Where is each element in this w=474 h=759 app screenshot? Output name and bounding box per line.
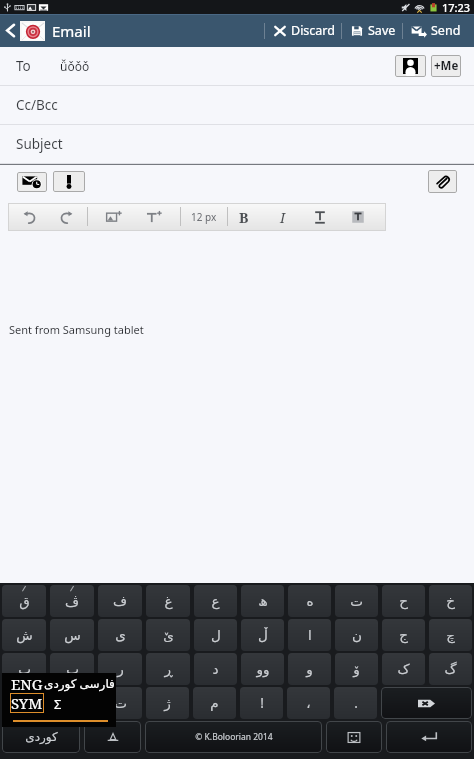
button[interactable]: وو <box>241 653 284 685</box>
button[interactable]: Contacts <box>395 55 426 77</box>
button[interactable]: Redo <box>49 203 83 231</box>
button[interactable]: خ <box>429 585 472 617</box>
button[interactable]: و <box>288 653 331 685</box>
staticText: Σ <box>54 695 62 713</box>
staticText: I <box>280 208 286 227</box>
button[interactable]: ە <box>288 585 331 617</box>
button[interactable]: ی <box>98 619 142 651</box>
button[interactable]: ب <box>2 653 46 685</box>
button[interactable]: Text color <box>341 203 375 231</box>
button[interactable]: To <box>0 47 474 85</box>
button[interactable]: Underline <box>303 203 337 231</box>
button[interactable]: ت <box>335 585 378 617</box>
button[interactable]: +Me <box>431 55 461 77</box>
staticText: خ <box>446 593 455 609</box>
button[interactable]: . <box>334 687 377 719</box>
staticText: Send <box>431 22 461 39</box>
button[interactable]: I <box>266 203 300 231</box>
button[interactable]: SYM <box>2 687 94 719</box>
staticText: ێ <box>163 627 174 643</box>
staticText: +Me <box>434 58 459 74</box>
button[interactable]: س <box>50 619 94 651</box>
button[interactable]: B <box>227 203 261 231</box>
staticText: Cc/Bcc <box>16 96 58 114</box>
staticText: Discard <box>291 22 335 39</box>
button[interactable]: Discard <box>265 14 341 47</box>
button[interactable]: ، <box>287 687 330 719</box>
button[interactable]: Back <box>0 14 20 47</box>
staticText: ا <box>308 627 312 643</box>
button[interactable]: ژ <box>146 687 189 719</box>
button[interactable]: Attach <box>428 170 457 193</box>
button[interactable]: ت <box>98 687 142 719</box>
button[interactable]: Save <box>342 14 402 47</box>
staticText: غ <box>164 593 173 609</box>
button[interactable]: Backspace <box>381 687 472 719</box>
staticText: فارسی کوردی <box>44 675 124 691</box>
staticText: م <box>210 695 219 711</box>
staticText: ! <box>260 694 264 712</box>
button[interactable]: م <box>193 687 236 719</box>
button[interactable]: ع <box>194 585 237 617</box>
button[interactable]: ش <box>2 619 46 651</box>
button[interactable]: Insert image <box>97 203 131 231</box>
staticText: ە <box>306 593 314 609</box>
staticText: . <box>354 694 358 712</box>
button[interactable]: ڵ <box>241 619 284 651</box>
button[interactable]: پ <box>50 653 94 685</box>
button[interactable]: غ <box>146 585 190 617</box>
button[interactable]: ر <box>98 653 142 685</box>
staticText: ژ <box>164 695 171 711</box>
button[interactable]: Schedule send <box>17 172 47 192</box>
staticText: ش <box>16 627 33 643</box>
button[interactable]: د <box>194 653 237 685</box>
button[interactable]: Undo <box>13 203 47 231</box>
button[interactable]: Send <box>403 14 467 47</box>
staticText: ع <box>211 593 220 609</box>
staticText: Email <box>52 21 91 41</box>
button[interactable]: © K.Boloorian 2014 <box>145 721 322 753</box>
staticText: SYM <box>11 693 43 713</box>
button[interactable]: ھ <box>241 585 284 617</box>
staticText: ب <box>18 661 31 677</box>
button[interactable]: ا <box>288 619 331 651</box>
button[interactable]: ل <box>194 619 237 651</box>
button[interactable]: ف <box>98 585 142 617</box>
staticText: ر <box>117 661 124 677</box>
button[interactable]: گ <box>429 653 472 685</box>
staticText: 12 px <box>191 210 217 224</box>
staticText: ت <box>114 695 127 711</box>
staticText: کوردی <box>25 730 58 744</box>
button[interactable]: ڤ <box>50 585 94 617</box>
staticText: ی <box>115 627 126 643</box>
button[interactable]: چ <box>429 619 472 651</box>
button[interactable]: Font size <box>137 203 171 231</box>
button[interactable]: Priority <box>53 171 85 192</box>
button[interactable]: Cc/Bcc <box>0 86 474 124</box>
button[interactable]: ک <box>382 653 425 685</box>
staticText: ENG <box>11 674 43 694</box>
button[interactable]: کوردی <box>2 721 80 753</box>
button[interactable]: ڕ <box>146 653 190 685</box>
staticText: ھ <box>258 593 268 609</box>
button[interactable]: ج <box>382 619 425 651</box>
staticText: Save <box>368 22 396 39</box>
button[interactable]: ن <box>335 619 378 651</box>
button[interactable]: ح <box>382 585 425 617</box>
button[interactable]: Enter <box>386 721 472 753</box>
button[interactable]: ێ <box>146 619 190 651</box>
button[interactable]: Settings <box>84 721 141 753</box>
staticText: ڤ <box>65 593 79 609</box>
button[interactable]: Emoji <box>326 721 382 753</box>
button[interactable]: Subject <box>0 125 474 163</box>
staticText: ۆ <box>353 661 360 677</box>
staticText: ل <box>211 627 221 643</box>
staticText: ǚǒǒǒ <box>60 58 90 74</box>
button[interactable]: ۆ <box>335 653 378 685</box>
button[interactable]: ! <box>240 687 283 719</box>
staticText: ن <box>352 627 362 643</box>
staticText: چ <box>446 627 455 643</box>
staticText: Subject <box>16 135 63 153</box>
staticText: © K.Boloorian 2014 <box>195 731 273 743</box>
button[interactable]: ق <box>2 585 46 617</box>
